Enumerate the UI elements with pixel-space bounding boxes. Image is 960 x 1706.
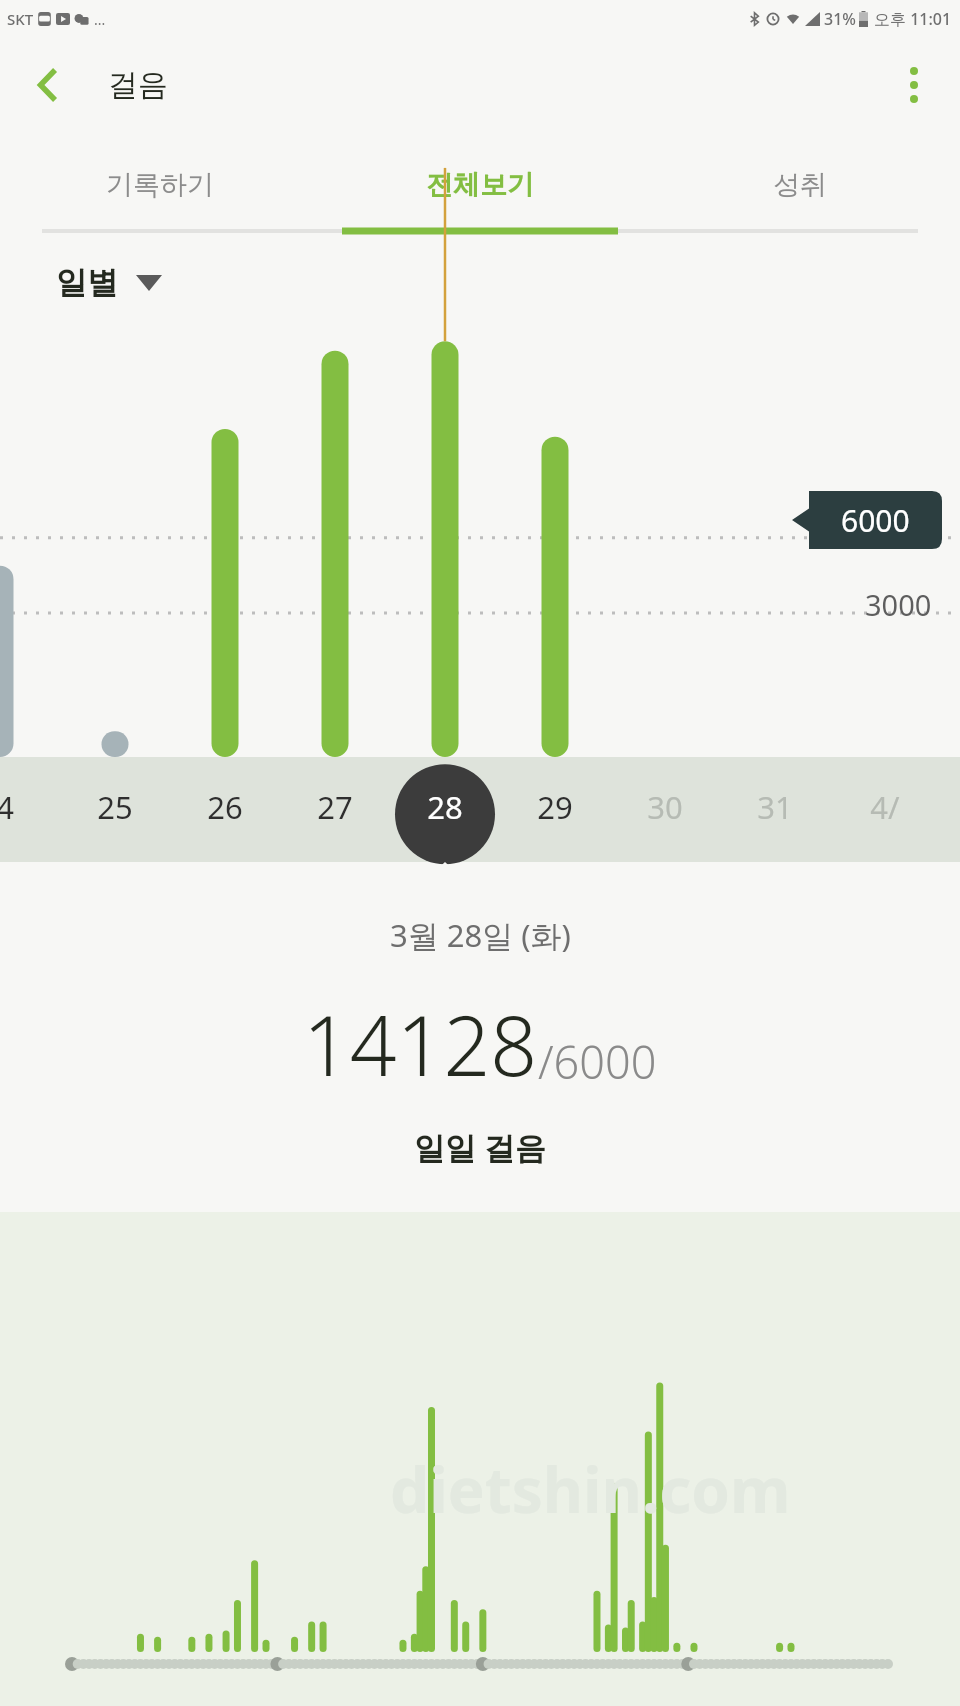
staticText: SKT xyxy=(7,9,34,29)
button[interactable]: 26 xyxy=(189,786,261,828)
button[interactable]: 4/ xyxy=(849,786,921,828)
staticText: ... xyxy=(94,10,106,29)
staticText: 3월 28일 (화) xyxy=(390,914,571,956)
button[interactable]: 4 xyxy=(0,786,41,828)
button[interactable]: 전체보기 xyxy=(320,132,640,237)
button[interactable]: 29 xyxy=(519,786,591,828)
button[interactable]: 25 xyxy=(79,786,151,828)
staticText: 31% xyxy=(824,8,856,30)
staticText: 14128 xyxy=(303,988,538,1100)
staticText: 일별 xyxy=(56,263,118,302)
button[interactable]: 성취 xyxy=(640,132,960,237)
button[interactable]: 30 xyxy=(629,786,701,828)
staticText: dietshin.com xyxy=(390,1447,791,1531)
staticText: 3000 xyxy=(865,585,932,624)
staticText: 오후 11:01 xyxy=(874,8,952,30)
button[interactable]: Back xyxy=(20,57,76,113)
staticText: 성취 xyxy=(773,168,827,202)
button[interactable]: 28 xyxy=(409,786,481,828)
staticText: 일일 걸음 xyxy=(414,1126,547,1168)
button[interactable]: 31 xyxy=(739,786,811,828)
staticText: /6000 xyxy=(538,1031,657,1092)
button[interactable]: More options xyxy=(886,57,942,113)
button[interactable]: 기록하기 xyxy=(0,132,320,237)
staticText: 6000 xyxy=(841,500,910,541)
button[interactable]: 27 xyxy=(299,786,371,828)
staticText: 걸음 xyxy=(108,66,168,104)
staticText: 기록하기 xyxy=(106,168,214,202)
button[interactable]: 일별 xyxy=(56,263,162,302)
staticText: 전체보기 xyxy=(426,168,534,202)
